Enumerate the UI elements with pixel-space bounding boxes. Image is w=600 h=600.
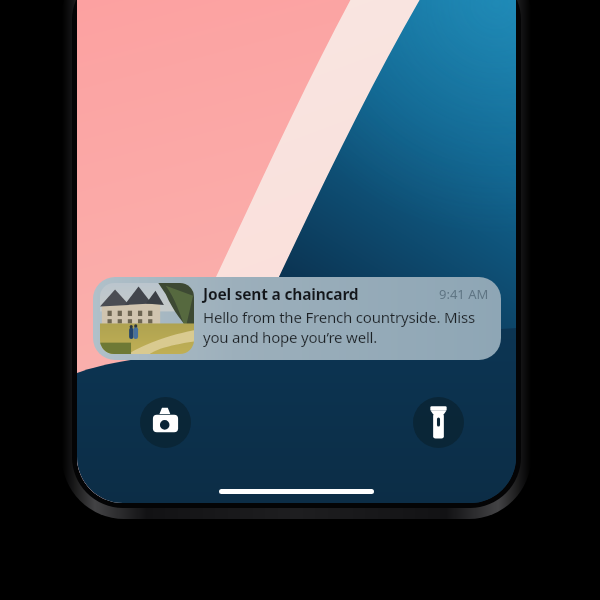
staticText: Hello from the French countryside. Miss … [203,307,489,347]
staticText: 9:41 AM [439,285,489,303]
button[interactable]: Joel sent a chaincard [93,277,501,360]
staticText: Joel sent a chaincard [203,283,359,304]
button[interactable]: Camera [140,397,191,448]
button[interactable]: Flashlight [413,397,464,448]
